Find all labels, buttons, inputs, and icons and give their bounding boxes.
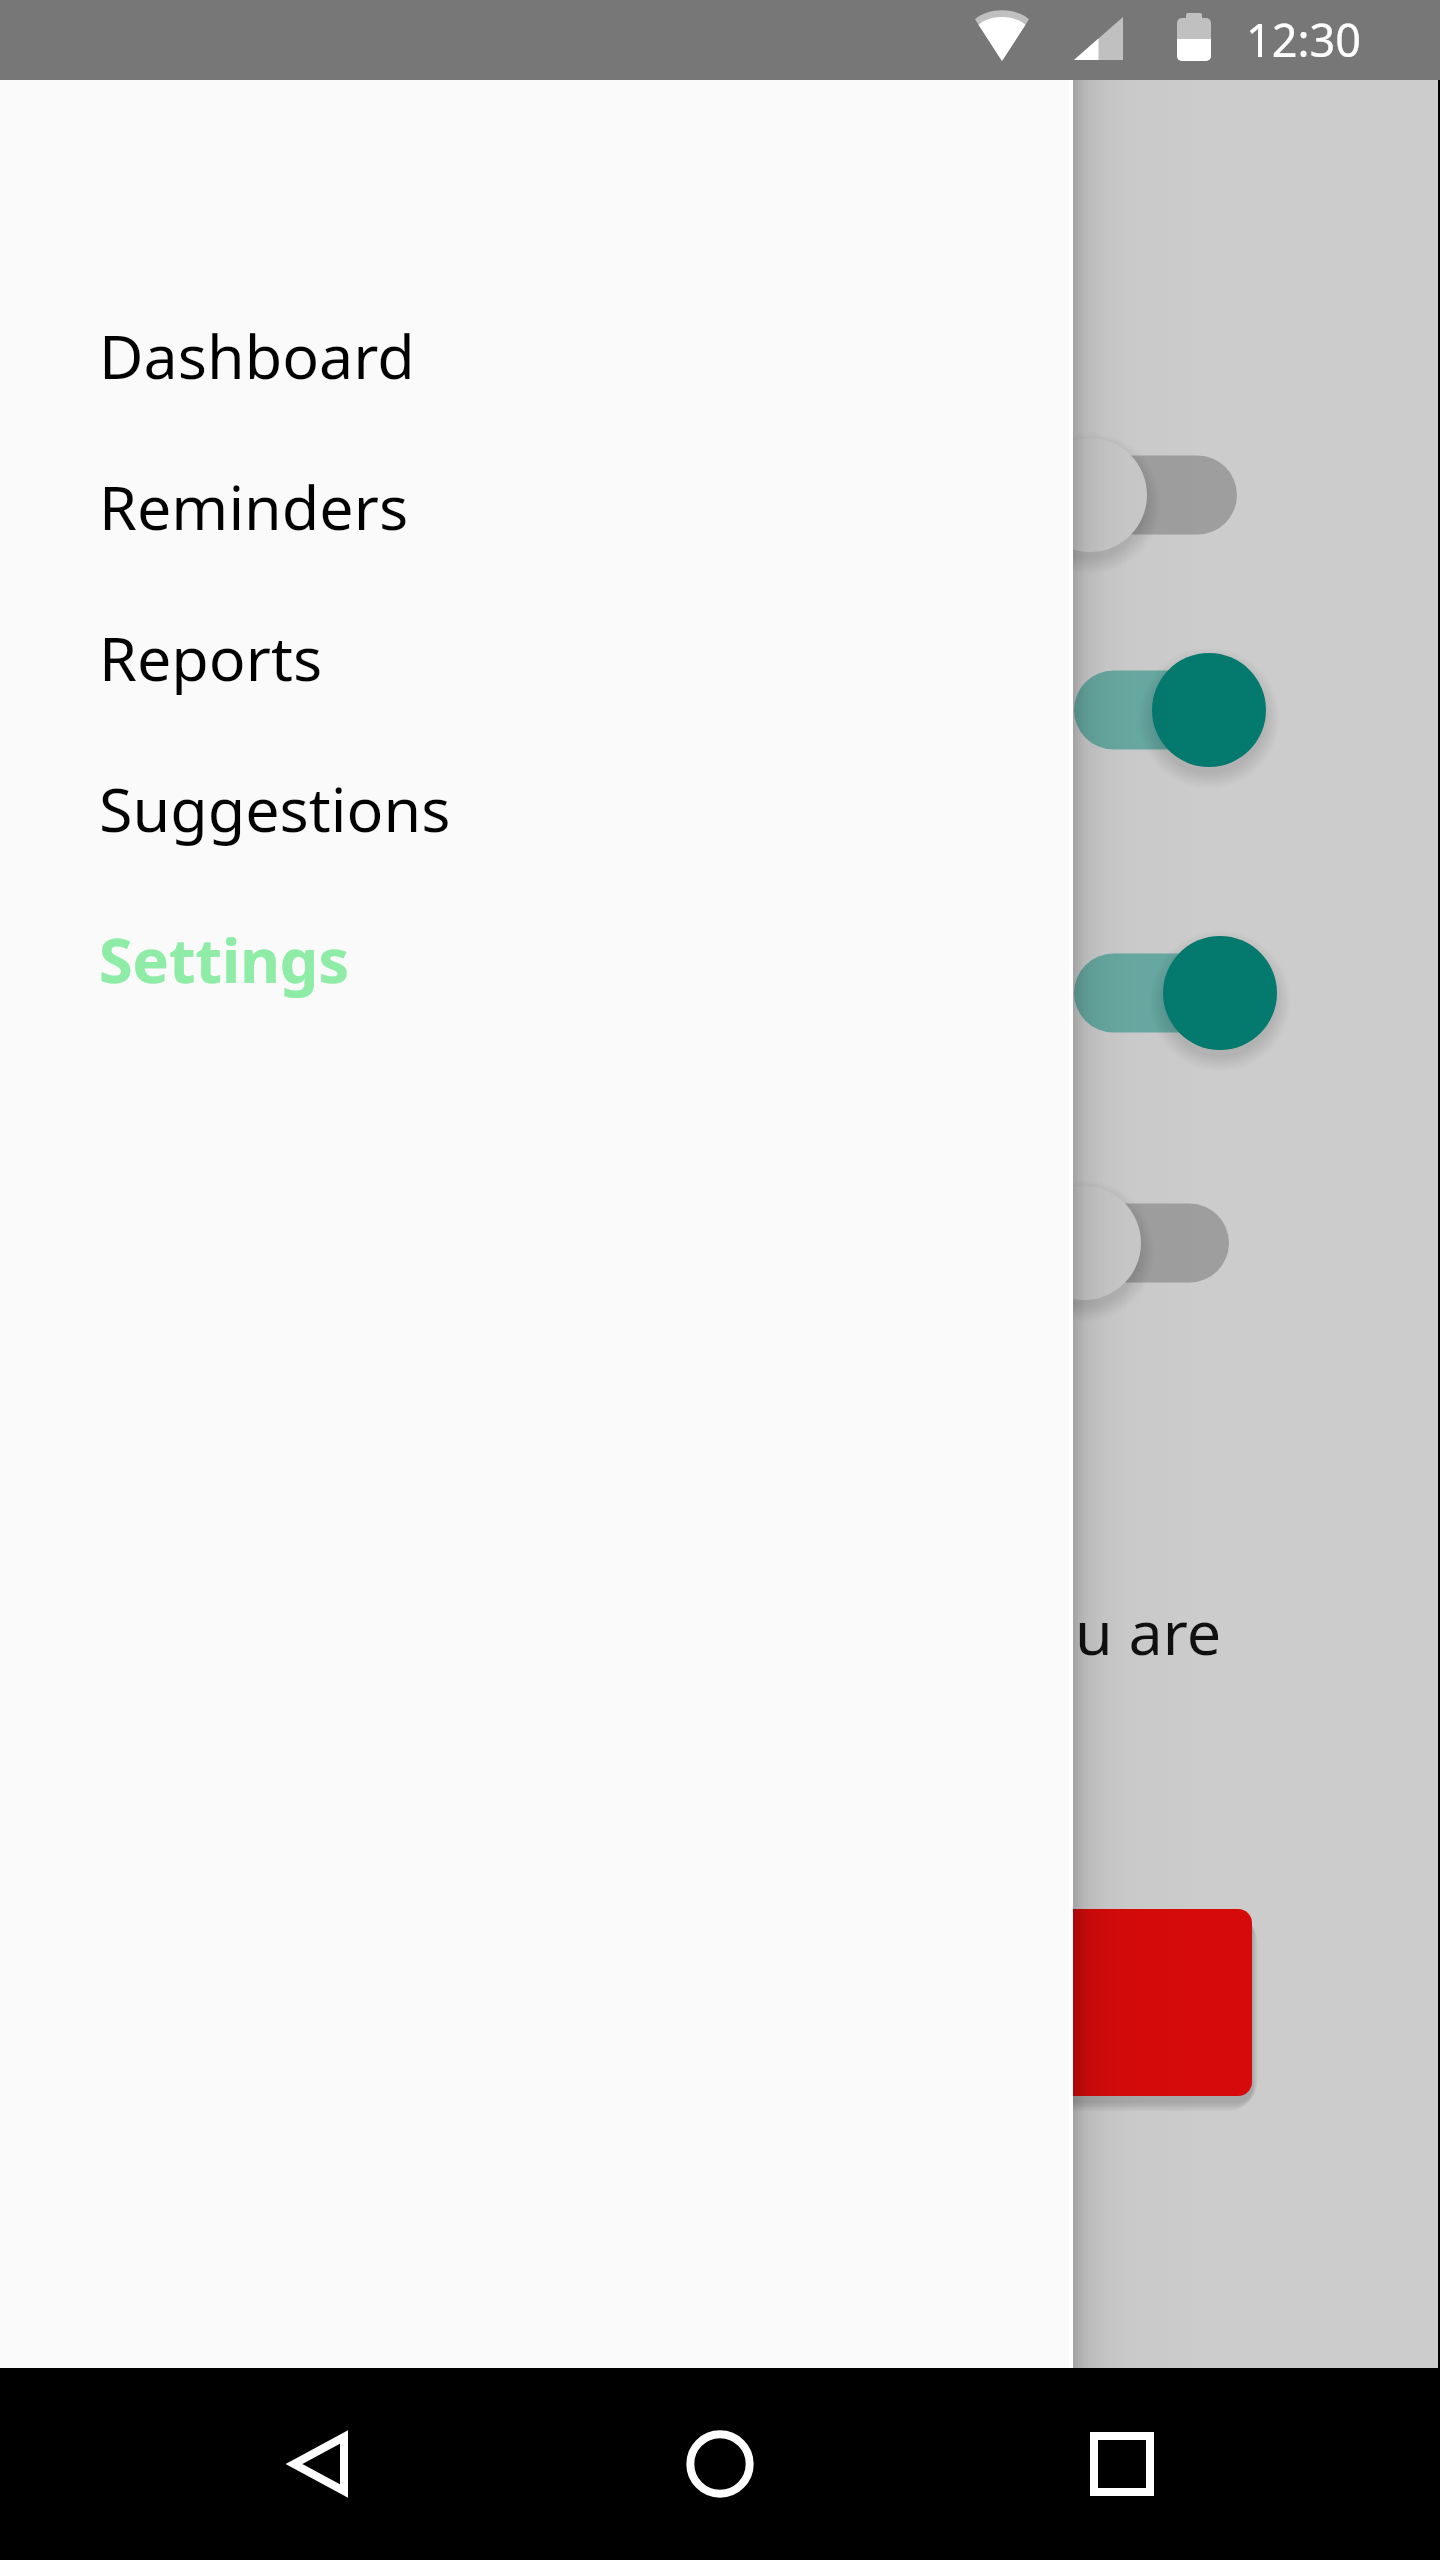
button[interactable]: Home xyxy=(664,2408,776,2520)
button[interactable]: Setting off xyxy=(1020,1163,1320,1323)
button[interactable]: Recent apps xyxy=(1066,2408,1178,2520)
button[interactable]: Settings xyxy=(0,884,1073,1035)
staticText: 12:30 xyxy=(1246,9,1362,70)
button[interactable]: Setting on xyxy=(1020,913,1320,1073)
button[interactable]: Delete xyxy=(940,1909,1252,2096)
button[interactable]: Dashboard xyxy=(0,280,1073,431)
staticText: Reminders xyxy=(99,465,409,548)
button[interactable]: Reminders xyxy=(0,431,1073,582)
button[interactable]: Setting on xyxy=(1020,630,1320,790)
staticText: Notify me when you are xyxy=(537,1590,1222,1673)
button[interactable]: Back xyxy=(262,2408,374,2520)
button[interactable]: Setting off xyxy=(1020,415,1320,575)
staticText: Suggestions xyxy=(99,767,451,850)
button[interactable]: Reports xyxy=(0,582,1073,733)
staticText: Dashboard xyxy=(99,314,415,397)
staticText: Reports xyxy=(99,616,323,699)
button[interactable]: Suggestions xyxy=(0,733,1073,884)
staticText: Settings xyxy=(99,918,350,1001)
